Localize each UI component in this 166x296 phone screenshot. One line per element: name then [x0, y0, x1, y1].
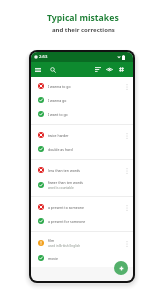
button[interactable]: twice harder [31, 128, 133, 142]
button[interactable]: More options [122, 203, 131, 212]
staticText: I wanna go [48, 98, 67, 103]
staticText: twice harder [48, 133, 69, 138]
button[interactable]: Sort [92, 64, 103, 75]
button[interactable]: I wanna to go [31, 79, 133, 93]
button[interactable]: I want to go [31, 107, 133, 121]
button[interactable]: More options [122, 131, 131, 140]
staticText: I wanna to go [48, 84, 71, 89]
staticText: movie [48, 256, 58, 261]
staticText: I want to go [48, 112, 68, 117]
button[interactable]: film [31, 235, 133, 251]
staticText: used in British English [48, 244, 81, 248]
button[interactable]: Search [47, 64, 58, 75]
button[interactable]: Menu [32, 64, 43, 75]
button[interactable]: Tags [116, 64, 127, 75]
staticText: film [48, 238, 55, 243]
staticText: less than ten words [48, 168, 80, 173]
button[interactable]: movie [31, 251, 133, 265]
staticText: double as hard [48, 147, 73, 152]
button[interactable]: a present for someone [31, 214, 133, 228]
button[interactable]: less than ten words [31, 163, 133, 177]
button[interactable]: More options [122, 166, 131, 175]
button[interactable]: More options [122, 239, 131, 248]
button[interactable]: I wanna go [31, 93, 133, 107]
staticText: Typical mistakes [47, 12, 119, 24]
staticText: a present for someone [48, 219, 86, 224]
button[interactable]: a present to someone [31, 200, 133, 214]
staticText: 2:53 [39, 54, 48, 60]
button[interactable]: Add [114, 261, 128, 275]
button[interactable]: More options [122, 82, 131, 91]
staticText: word is countable [48, 186, 74, 190]
button[interactable]: Visibility [104, 64, 115, 75]
button[interactable]: double as hard [31, 142, 133, 156]
staticText: and their corrections [52, 26, 115, 34]
staticText: a present to someone [48, 205, 84, 210]
button[interactable]: fewer than ten words [31, 177, 133, 193]
staticText: fewer than ten words [48, 180, 84, 185]
